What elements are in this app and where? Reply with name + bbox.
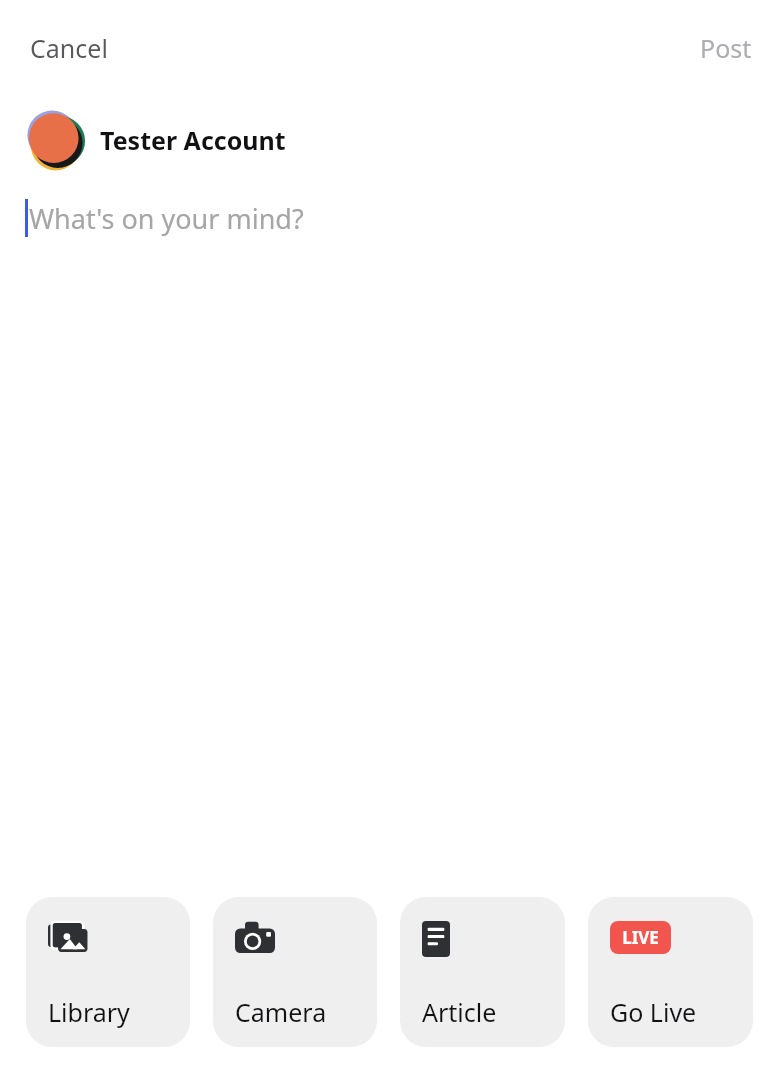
button[interactable]: Cancel <box>26 25 112 71</box>
staticText: Article <box>422 995 497 1029</box>
button[interactable]: What's on your mind? <box>0 188 784 248</box>
button[interactable]: Profile picture <box>0 96 784 184</box>
button[interactable]: Library <box>26 897 190 1047</box>
other: Profile picture <box>24 109 86 171</box>
staticText: Post <box>700 31 752 65</box>
staticText: Tester Account <box>100 123 286 157</box>
staticText: Go Live <box>610 995 697 1029</box>
staticText: Camera <box>235 995 327 1029</box>
button[interactable]: Article <box>400 897 565 1047</box>
staticText: Cancel <box>30 31 108 65</box>
other: Article <box>422 921 450 957</box>
other: Go Live <box>610 921 671 954</box>
staticText: LIVE <box>622 926 659 949</box>
staticText: What's on your mind? <box>29 200 304 237</box>
staticText: Library <box>48 995 130 1029</box>
other: Camera <box>235 921 275 955</box>
other: Library <box>48 921 90 957</box>
button[interactable]: Camera <box>213 897 377 1047</box>
button[interactable]: Go Live <box>588 897 753 1047</box>
button[interactable]: Post <box>696 25 756 71</box>
